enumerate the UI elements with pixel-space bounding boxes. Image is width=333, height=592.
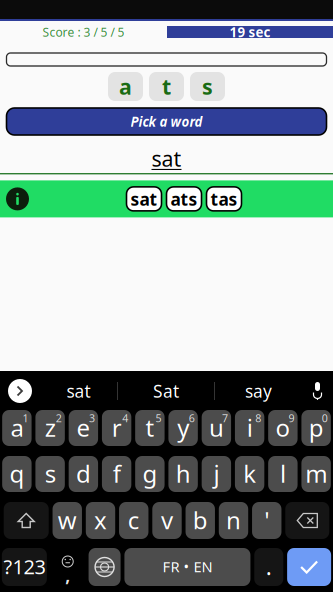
button[interactable]: c bbox=[119, 502, 148, 539]
staticText: sat bbox=[66, 379, 90, 402]
button[interactable]: FR • EN bbox=[124, 548, 250, 586]
button[interactable]: Show more bbox=[0, 375, 40, 407]
staticText: d bbox=[76, 458, 91, 489]
staticText: sat bbox=[151, 144, 181, 173]
staticText: z bbox=[45, 412, 56, 443]
staticText: say bbox=[245, 379, 272, 402]
staticText: 9 bbox=[289, 411, 295, 425]
button[interactable]: b bbox=[185, 502, 215, 539]
button[interactable]: ' bbox=[252, 502, 281, 539]
staticText: o bbox=[275, 412, 290, 443]
button[interactable]: say bbox=[215, 375, 302, 407]
button[interactable]: t bbox=[135, 410, 165, 446]
staticText: 4 bbox=[122, 411, 128, 425]
staticText: l bbox=[280, 458, 286, 489]
button[interactable]: s bbox=[190, 72, 225, 101]
button[interactable]: Shift bbox=[4, 502, 49, 539]
staticText: v bbox=[161, 504, 173, 536]
staticText: n bbox=[226, 504, 241, 536]
button[interactable]: d bbox=[69, 456, 98, 492]
button[interactable]: f bbox=[102, 456, 131, 492]
button[interactable]: sat bbox=[40, 375, 117, 407]
staticText: 0 bbox=[322, 411, 328, 425]
button[interactable]: t bbox=[149, 72, 184, 101]
staticText: w bbox=[58, 504, 77, 536]
staticText: Pick a word bbox=[130, 113, 202, 130]
staticText: u bbox=[209, 412, 224, 443]
button[interactable]: n bbox=[219, 502, 248, 539]
button[interactable]: p bbox=[301, 410, 331, 446]
button[interactable]: r bbox=[102, 410, 131, 446]
button[interactable]: Enter bbox=[287, 548, 331, 586]
staticText: s bbox=[202, 72, 213, 101]
staticText: x bbox=[94, 504, 107, 536]
button[interactable]: u bbox=[202, 410, 231, 446]
button[interactable]: e bbox=[69, 410, 98, 446]
button[interactable]: l bbox=[268, 456, 298, 492]
staticText: k bbox=[243, 458, 256, 489]
staticText: e bbox=[76, 412, 90, 443]
button[interactable]: Voice input bbox=[302, 375, 333, 407]
button[interactable]: j bbox=[202, 456, 231, 492]
staticText: tas bbox=[210, 187, 237, 210]
button[interactable]: i bbox=[235, 410, 264, 446]
staticText: a bbox=[119, 72, 132, 101]
staticText: t bbox=[145, 412, 154, 443]
staticText: g bbox=[142, 458, 157, 489]
staticText: ' bbox=[264, 504, 269, 536]
staticText: 2 bbox=[56, 411, 62, 425]
staticText: sat bbox=[130, 187, 157, 210]
button[interactable]: y bbox=[168, 410, 198, 446]
staticText: p bbox=[309, 412, 324, 443]
staticText: . bbox=[266, 551, 272, 581]
staticText: y bbox=[177, 412, 189, 443]
button[interactable]: v bbox=[152, 502, 182, 539]
staticText: j bbox=[213, 458, 219, 489]
button[interactable]: w bbox=[52, 502, 82, 539]
button[interactable]: Backspace bbox=[285, 502, 329, 539]
staticText: t bbox=[162, 72, 171, 101]
staticText: 6 bbox=[189, 411, 195, 425]
staticText: FR • EN bbox=[162, 557, 212, 576]
button[interactable]: a bbox=[2, 410, 32, 446]
button[interactable]: sat bbox=[126, 187, 161, 211]
button[interactable]: s bbox=[35, 456, 65, 492]
button[interactable]: a bbox=[108, 72, 143, 101]
staticText: 8 bbox=[255, 411, 261, 425]
button[interactable]: m bbox=[301, 456, 331, 492]
button[interactable]: tas bbox=[206, 187, 241, 211]
staticText: Score : 3 / 5 / 5 bbox=[42, 24, 124, 40]
staticText: f bbox=[113, 458, 121, 489]
button[interactable]: Sat bbox=[118, 375, 214, 407]
staticText: 5 bbox=[156, 411, 162, 425]
staticText: h bbox=[176, 458, 191, 489]
staticText: i bbox=[247, 412, 253, 443]
staticText: 1 bbox=[23, 411, 29, 425]
staticText: 3 bbox=[89, 411, 95, 425]
staticText: ?123 bbox=[3, 553, 45, 580]
button[interactable]: z bbox=[35, 410, 65, 446]
staticText: ats bbox=[170, 187, 197, 210]
staticText: Sat bbox=[153, 379, 179, 402]
button[interactable]: Switch language bbox=[89, 548, 121, 586]
staticText: 7 bbox=[222, 411, 228, 425]
button[interactable]: Emoji bbox=[51, 548, 85, 586]
button[interactable]: q bbox=[2, 456, 32, 492]
button[interactable]: x bbox=[86, 502, 115, 539]
staticText: a bbox=[10, 412, 23, 443]
button[interactable]: Pick a word bbox=[6, 108, 326, 135]
button[interactable]: k bbox=[235, 456, 264, 492]
button[interactable]: Info bbox=[0, 180, 35, 217]
button[interactable]: o bbox=[268, 410, 298, 446]
button[interactable]: ats bbox=[166, 187, 201, 211]
button[interactable]: g bbox=[135, 456, 165, 492]
staticText: r bbox=[112, 412, 122, 443]
staticText: 19 sec bbox=[229, 23, 270, 41]
staticText: c bbox=[128, 504, 140, 536]
staticText: q bbox=[9, 458, 24, 489]
staticText: m bbox=[305, 458, 327, 489]
button[interactable]: ?123 bbox=[2, 548, 47, 586]
button[interactable]: . bbox=[254, 548, 283, 586]
button[interactable]: h bbox=[168, 456, 198, 492]
staticText: , bbox=[65, 564, 70, 587]
